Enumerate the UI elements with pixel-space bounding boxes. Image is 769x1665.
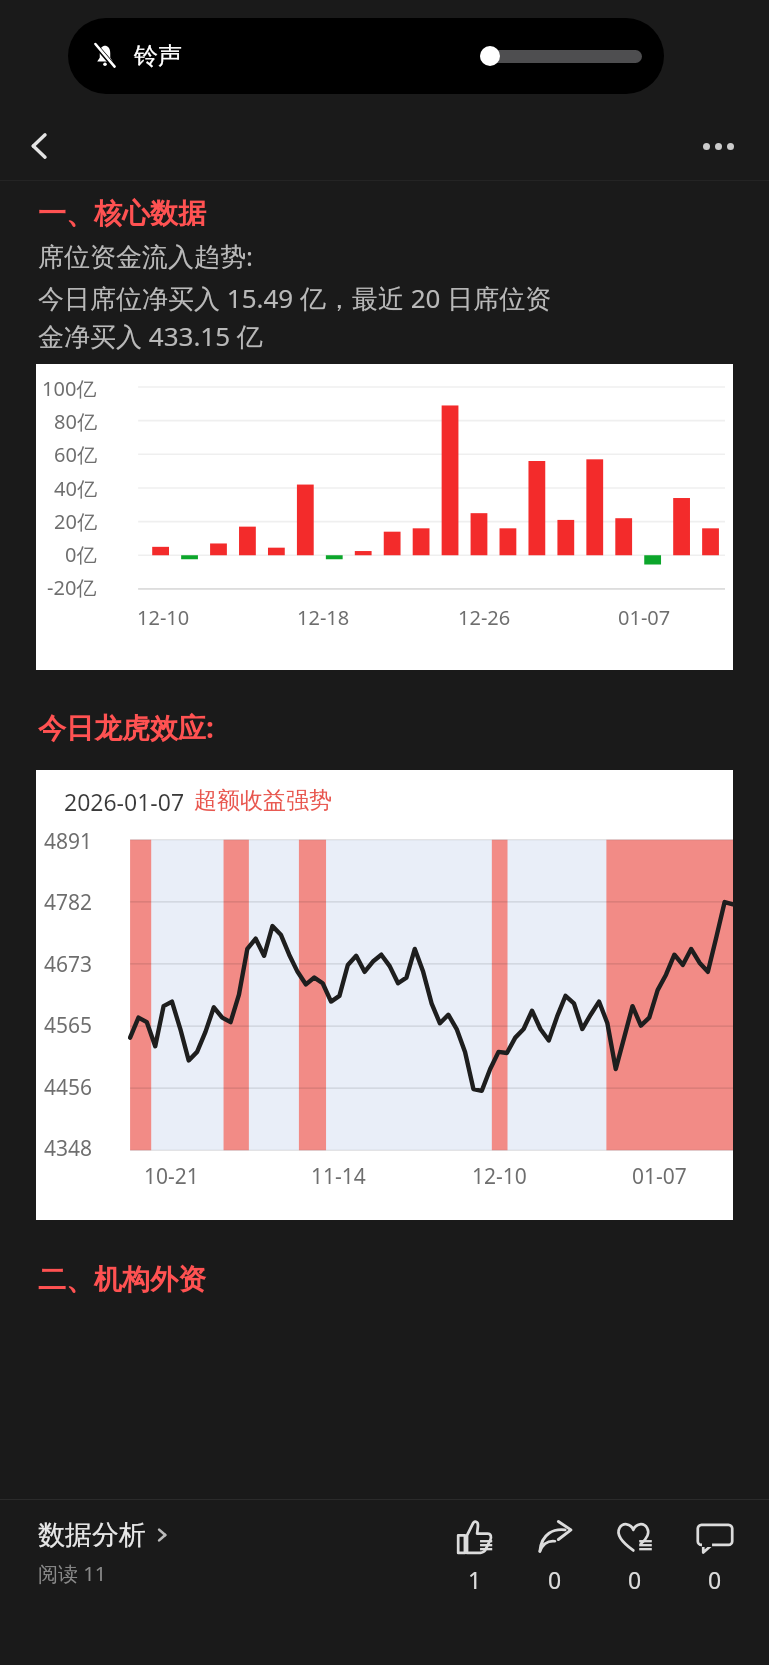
staticText: 0 — [708, 1564, 722, 1595]
staticText: 0 — [548, 1564, 562, 1595]
button[interactable]: 数据分析 — [38, 1518, 171, 1587]
button[interactable]: Ringer muted — [68, 18, 664, 94]
staticText: 100亿 — [42, 375, 97, 402]
staticText: 01-07 — [618, 604, 671, 631]
staticText: 20亿 — [54, 508, 97, 535]
staticText: 4348 — [44, 1134, 93, 1163]
staticText: 二、机构外资 — [38, 1262, 206, 1297]
button[interactable]: Back — [12, 118, 68, 174]
button[interactable]: Share — [515, 1512, 595, 1599]
staticText: 12-26 — [458, 604, 511, 631]
staticText: 超额收益强势 — [194, 786, 332, 815]
staticText: 4782 — [44, 888, 93, 917]
staticText: 60亿 — [54, 441, 97, 468]
staticText: 1 — [468, 1564, 482, 1595]
staticText: 4891 — [44, 827, 93, 856]
staticText: 数据分析 — [38, 1518, 146, 1552]
button[interactable]: Favourite — [595, 1512, 675, 1599]
staticText: 4673 — [44, 950, 93, 979]
staticText: 阅读 11 — [38, 1560, 107, 1587]
staticText: 12-10 — [137, 604, 190, 631]
staticText: 铃声 — [134, 41, 182, 71]
staticText: 一、核心数据 — [38, 196, 206, 231]
staticText: -20亿 — [47, 574, 97, 601]
staticText: 0 — [628, 1564, 642, 1595]
staticText: 11-14 — [311, 1162, 366, 1191]
staticText: 10-21 — [144, 1162, 199, 1191]
staticText: 80亿 — [54, 408, 97, 435]
staticText: 2026-01-07 — [64, 786, 185, 817]
button[interactable]: Comment — [675, 1512, 755, 1599]
button[interactable]: Like — [435, 1512, 515, 1599]
staticText: 席位资金流入趋势: — [38, 238, 253, 274]
staticText: 12-10 — [472, 1162, 527, 1191]
staticText: 金净买入 433.15 亿 — [38, 318, 263, 354]
staticText: 40亿 — [54, 475, 97, 502]
staticText: 01-07 — [632, 1162, 687, 1191]
staticText: 4565 — [44, 1011, 93, 1040]
staticText: 4456 — [44, 1073, 93, 1102]
staticText: 今日龙虎效应: — [38, 708, 214, 746]
staticText: 0亿 — [65, 541, 97, 568]
button[interactable]: More options — [687, 118, 749, 174]
staticText: 12-18 — [297, 604, 350, 631]
other: Ringer muted — [90, 41, 120, 71]
staticText: 今日席位净买入 15.49 亿，最近 20 日席位资 — [38, 280, 552, 316]
